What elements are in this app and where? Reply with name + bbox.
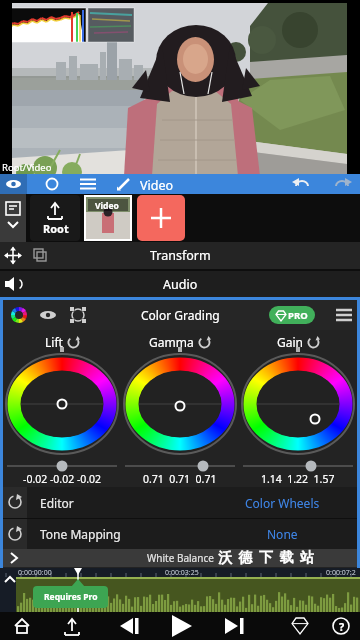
staticText: 0:00:03:25 <box>165 568 199 578</box>
staticText: PRO <box>288 309 308 322</box>
button[interactable]: Root <box>30 195 80 241</box>
staticText: -0.02 -0.02 -0.02 <box>23 472 102 486</box>
staticText: 1.14 1.22 1.57 <box>261 472 335 486</box>
button[interactable] <box>288 174 316 194</box>
staticText: Transform <box>150 247 211 264</box>
staticText: 0:00:07:2 <box>326 568 356 578</box>
button[interactable] <box>40 174 64 194</box>
button[interactable] <box>10 352 114 456</box>
button[interactable] <box>60 612 120 640</box>
staticText: Gamma <box>149 334 194 350</box>
button[interactable] <box>0 174 27 194</box>
button[interactable] <box>0 612 60 640</box>
staticText: Color Grading <box>141 307 220 323</box>
button[interactable]: Transform <box>0 242 360 269</box>
button[interactable] <box>76 174 100 194</box>
staticText: Root <box>43 221 69 236</box>
button[interactable] <box>120 612 180 640</box>
button[interactable] <box>3 460 121 472</box>
button[interactable] <box>128 352 232 456</box>
staticText: None <box>267 526 298 542</box>
button[interactable] <box>300 612 360 640</box>
button[interactable] <box>112 174 172 194</box>
staticText: Tone Mapping <box>40 526 121 542</box>
button[interactable] <box>330 174 358 194</box>
staticText: Requires Pro <box>44 591 98 603</box>
button[interactable] <box>246 352 350 456</box>
button[interactable] <box>180 612 240 640</box>
staticText: Video <box>140 177 174 194</box>
staticText: 0:00:00:00 <box>18 568 52 578</box>
staticText: Color Wheels <box>245 495 320 511</box>
staticText: Editor <box>40 495 74 511</box>
button[interactable] <box>0 194 26 242</box>
button[interactable] <box>240 612 300 640</box>
button[interactable]: Video <box>86 197 130 239</box>
button[interactable]: Audio <box>0 271 360 297</box>
button[interactable]: White Balance <box>3 549 357 567</box>
button[interactable]: PRO <box>269 306 315 324</box>
button[interactable]: Editor <box>3 487 357 518</box>
staticText: 0.71 0.71 0.71 <box>143 472 217 486</box>
staticText: White Balance <box>147 551 214 565</box>
button[interactable] <box>239 460 357 472</box>
staticText: Video <box>95 200 119 212</box>
staticText: Gain <box>277 334 303 350</box>
staticText: Lift <box>45 334 63 350</box>
button[interactable] <box>137 195 185 241</box>
button[interactable]: Requires Pro <box>33 586 108 608</box>
staticText: ? <box>339 619 345 634</box>
button[interactable] <box>121 460 239 472</box>
button[interactable]: Tone Mapping <box>3 519 357 549</box>
staticText: 沃德下载站 <box>218 549 321 567</box>
staticText: Audio <box>163 276 198 293</box>
staticText: Root/Video <box>2 161 52 174</box>
